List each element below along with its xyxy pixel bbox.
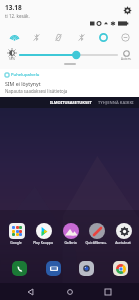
staticText: Puhelupalvelu: [11, 72, 40, 78]
button[interactable]: Bluetooth: [26, 30, 46, 45]
staticText: Google: [10, 240, 22, 245]
button[interactable]: Asetukset: [110, 221, 136, 246]
staticText: ti 12. kesäk.: [5, 13, 30, 19]
button[interactable]: Recents: [100, 284, 116, 300]
button[interactable]: Brightness slider: [20, 50, 117, 60]
staticText: ILMOITUSASETUKSET: [50, 100, 92, 105]
button[interactable]: QuickMemo+: [83, 221, 109, 246]
button[interactable]: Play Kauppa: [30, 221, 56, 246]
staticText: TYHJENNÄ KAIKKI: [98, 100, 134, 105]
staticText: 58%: [9, 57, 15, 61]
staticText: Play Kauppa: [33, 240, 53, 245]
button[interactable]: Wi-Fi: [4, 30, 24, 45]
staticText: Asetukset: [115, 240, 131, 245]
button[interactable]: ILMOITUSASETUKSET: [46, 98, 96, 107]
staticText: Napauta saadaksesi lisätietoja: [5, 88, 68, 94]
button[interactable]: Chrome: [109, 257, 131, 279]
button[interactable]: Camera: [75, 257, 97, 279]
button[interactable]: Back: [23, 284, 39, 300]
staticText: 13.18: [5, 3, 22, 12]
button[interactable]: Home: [62, 284, 78, 300]
staticText: Galleria: [64, 240, 77, 245]
button[interactable]: Google: [3, 221, 29, 246]
button[interactable]: NFC: [71, 30, 91, 45]
button[interactable]: Messages: [42, 257, 64, 279]
staticText: QuickMemo+: [85, 240, 107, 245]
button[interactable]: Autom.: [119, 50, 134, 61]
button[interactable]: TYHJENNÄ KAIKKI: [96, 98, 139, 107]
button[interactable]: Galleria: [57, 221, 83, 246]
button[interactable]: Rotation: [48, 30, 68, 45]
staticText: Autom.: [121, 57, 132, 61]
button[interactable]: Ring mode: [93, 30, 113, 45]
button[interactable]: Settings: [120, 3, 134, 17]
button[interactable]: Do not disturb: [115, 30, 135, 45]
button[interactable]: Phone: [8, 257, 30, 279]
button[interactable]: Puhelupalvelu: [0, 69, 139, 97]
button[interactable]: Brightness: [5, 49, 18, 61]
staticText: SIM ei löytynyt: [5, 80, 41, 87]
